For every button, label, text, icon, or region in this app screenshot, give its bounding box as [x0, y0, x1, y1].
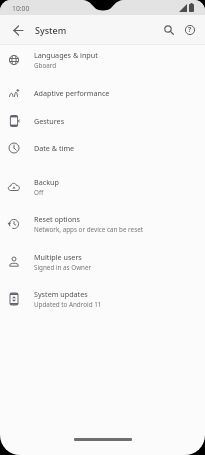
button[interactable] [9, 21, 27, 39]
staticText: ? [188, 25, 192, 35]
staticText: Multiple users [34, 252, 82, 262]
button[interactable]: System updates [0, 282, 205, 316]
staticText: 10:00 [12, 4, 30, 13]
button[interactable]: Date & time [0, 135, 205, 161]
staticText: Date & time [34, 143, 75, 153]
button[interactable] [161, 22, 177, 38]
staticText: Gestures [34, 116, 65, 126]
staticText: Languages & input [34, 50, 98, 60]
staticText: Adaptive performance [34, 88, 110, 98]
staticText: System updates [34, 289, 88, 299]
staticText: Off [34, 188, 44, 197]
staticText: Backup [34, 177, 59, 187]
button[interactable]: Reset options [0, 207, 205, 241]
button[interactable]: Adaptive performance [0, 80, 205, 106]
staticText: System [35, 24, 67, 36]
button[interactable]: Backup [0, 170, 205, 204]
staticText: Gboard [34, 61, 57, 70]
staticText: Signed in as Owner [34, 263, 92, 272]
button[interactable]: Gestures [0, 108, 205, 134]
button[interactable]: ? [182, 22, 198, 38]
button[interactable]: Multiple users [0, 245, 205, 279]
staticText: Network, apps or device can be reset [34, 225, 143, 234]
staticText: Reset options [34, 214, 80, 224]
staticText: Updated to Android 11 [34, 300, 102, 309]
button[interactable]: Languages & input [0, 43, 205, 77]
